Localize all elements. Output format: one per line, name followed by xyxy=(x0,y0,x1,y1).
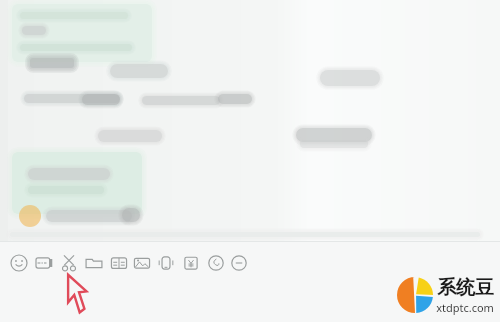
staticText: 系统豆 xyxy=(437,276,494,300)
staticText: xtdptc.com xyxy=(436,300,494,315)
button[interactable]: Files xyxy=(83,252,105,274)
button[interactable]: Screenshot xyxy=(58,252,80,274)
button[interactable]: GIF xyxy=(33,252,55,274)
button[interactable]: Emoji xyxy=(8,252,30,274)
button[interactable]: Voice input xyxy=(205,252,227,274)
button[interactable]: Image xyxy=(131,252,153,274)
button[interactable]: More xyxy=(228,252,250,274)
button[interactable]: Chat history xyxy=(108,252,130,274)
button[interactable]: Video call xyxy=(155,252,177,274)
button[interactable]: Transfer xyxy=(180,252,202,274)
